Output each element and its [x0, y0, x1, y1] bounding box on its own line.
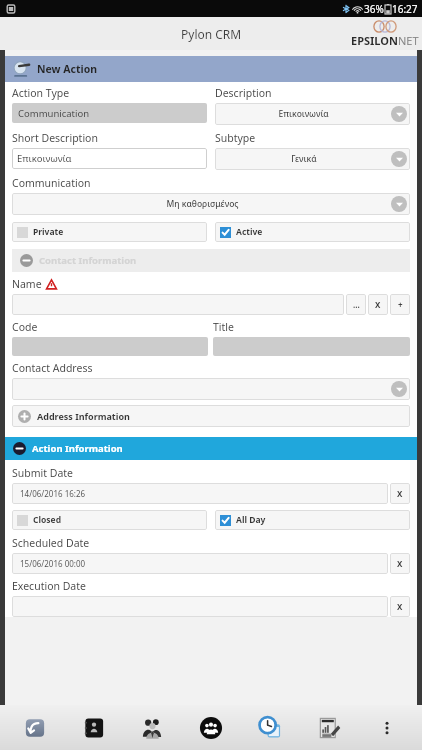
staticText: Title	[213, 320, 234, 334]
button[interactable]: Customers	[128, 705, 176, 750]
button[interactable]: Reports	[305, 705, 353, 750]
staticText: Contact Information	[39, 254, 137, 267]
button[interactable]: 15/06/2016 00:00	[12, 553, 388, 574]
button[interactable]: Action Information	[5, 437, 417, 460]
staticText: +	[398, 299, 403, 310]
button[interactable]: Contact Information	[12, 249, 410, 272]
staticText: NET	[398, 33, 419, 48]
staticText: Γενικά	[291, 153, 317, 165]
button[interactable]: Επικοινωνία	[12, 148, 207, 169]
staticText: Active	[236, 226, 263, 238]
staticText: X	[397, 558, 403, 569]
button[interactable]: X	[368, 294, 388, 315]
button[interactable]	[12, 596, 388, 617]
button[interactable]: Schedule	[246, 705, 294, 750]
staticText: Subtype	[215, 131, 256, 145]
button[interactable]: X	[390, 483, 410, 504]
button[interactable]: Επικοινωνία	[215, 103, 410, 125]
staticText: Description	[215, 86, 272, 100]
staticText: Short Description	[12, 131, 98, 145]
staticText: Pylon CRM	[181, 26, 242, 42]
staticText: Action Information	[32, 442, 123, 455]
button[interactable]: Contacts	[70, 705, 118, 750]
button[interactable]	[12, 294, 344, 315]
button[interactable]: Communication	[12, 103, 207, 123]
staticText: Επικοινωνία	[17, 152, 72, 165]
staticText: Closed	[33, 514, 62, 526]
staticText: New Action	[37, 62, 98, 76]
staticText: Scheduled Date	[12, 536, 90, 550]
staticText: Communication	[12, 176, 91, 190]
staticText: Communication	[18, 107, 90, 120]
button[interactable]: +	[390, 294, 410, 315]
staticText: 15/06/2016 00:00	[20, 558, 86, 569]
button[interactable]: Active	[215, 222, 410, 242]
staticText: Code	[12, 320, 38, 334]
staticText: 36%	[364, 2, 384, 16]
button[interactable]: ...	[346, 294, 366, 315]
staticText: Execution Date	[12, 579, 86, 593]
staticText: Submit Date	[12, 466, 74, 480]
staticText: Address Information	[37, 410, 130, 422]
staticText: EPSILON	[351, 33, 398, 48]
staticText: Name	[12, 277, 42, 291]
button[interactable]: Μη καθορισμένος	[12, 193, 410, 215]
button[interactable]: Γενικά	[215, 148, 410, 170]
button[interactable]: All Day	[215, 510, 410, 530]
button[interactable]: 14/06/2016 16:26	[12, 483, 388, 504]
staticText: Contact Address	[12, 361, 93, 375]
button[interactable]: More	[363, 705, 411, 750]
button[interactable]: Private	[12, 222, 207, 242]
button[interactable]: New Action	[5, 56, 417, 82]
staticText: Private	[33, 226, 64, 238]
staticText: X	[375, 299, 381, 310]
staticText: ...	[353, 299, 360, 310]
staticText: Επικοινωνία	[278, 108, 329, 120]
button[interactable]	[12, 378, 410, 400]
button[interactable]: Address Information	[12, 405, 410, 427]
button[interactable]: Closed	[12, 510, 207, 530]
staticText: Action Type	[12, 86, 70, 100]
staticText: Μη καθορισμένος	[166, 198, 239, 210]
staticText: X	[397, 601, 403, 612]
staticText: 16:27	[392, 2, 418, 16]
button[interactable]: Back	[11, 705, 59, 750]
button[interactable]: Groups	[187, 705, 235, 750]
staticText: X	[397, 488, 403, 499]
staticText: All Day	[236, 514, 266, 526]
button[interactable]: X	[390, 553, 410, 574]
button[interactable]: X	[390, 596, 410, 617]
staticText: 14/06/2016 16:26	[20, 488, 86, 499]
